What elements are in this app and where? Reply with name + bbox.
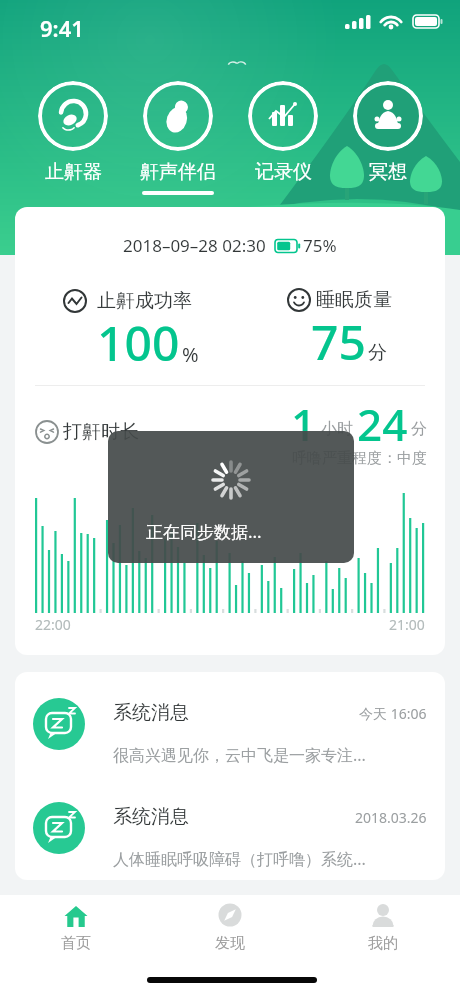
staticText: 75 (311, 309, 366, 374)
button[interactable]: 冥想 (336, 81, 440, 195)
staticText: 75% (303, 234, 337, 257)
staticText: 人体睡眠呼吸障碍（打呼噜）系统... (113, 848, 366, 870)
button[interactable]: 记录仪 (231, 81, 335, 195)
staticText: 100 (97, 310, 180, 375)
button[interactable]: 系统消息 (15, 776, 445, 880)
staticText: 24 (357, 394, 408, 446)
staticText: 冥想 (369, 160, 407, 184)
staticText: 正在同步数据... (146, 520, 262, 543)
button[interactable]: 我的 (343, 903, 423, 953)
staticText: 很高兴遇见你，云中飞是一家专注... (113, 744, 366, 766)
button[interactable]: 系统消息 (15, 672, 445, 776)
staticText: 系统消息 (113, 701, 189, 725)
staticText: 记录仪 (255, 160, 312, 184)
button[interactable]: 鼾声伴侣 (126, 81, 230, 195)
staticText: 系统消息 (113, 805, 189, 829)
staticText: 打鼾时长 (63, 420, 139, 444)
staticText: 发现 (215, 934, 245, 953)
staticText: % (182, 341, 199, 368)
staticText: 分 (411, 419, 427, 439)
staticText: 鼾声伴侣 (140, 160, 216, 184)
staticText: 今天 16:06 (359, 704, 427, 723)
staticText: 小时 (321, 419, 353, 439)
staticText: 呼噜严重程度：中度 (292, 449, 427, 468)
staticText: 首页 (61, 934, 91, 953)
staticText: 9:41 (40, 13, 84, 43)
staticText: 21:00 (389, 615, 425, 634)
staticText: 2018–09–28 02:30 (123, 234, 266, 257)
staticText: 2018.03.26 (355, 808, 427, 827)
staticText: 我的 (368, 934, 398, 953)
button[interactable]: 发现 (190, 903, 270, 953)
staticText: 22:00 (35, 615, 71, 634)
staticText: 1 (291, 394, 317, 446)
staticText: 睡眠质量 (316, 288, 392, 312)
staticText: 止鼾成功率 (97, 289, 192, 313)
staticText: 分 (368, 341, 387, 365)
button[interactable]: 止鼾器 (21, 81, 125, 195)
button[interactable]: 首页 (36, 903, 116, 953)
staticText: 止鼾器 (45, 160, 102, 184)
